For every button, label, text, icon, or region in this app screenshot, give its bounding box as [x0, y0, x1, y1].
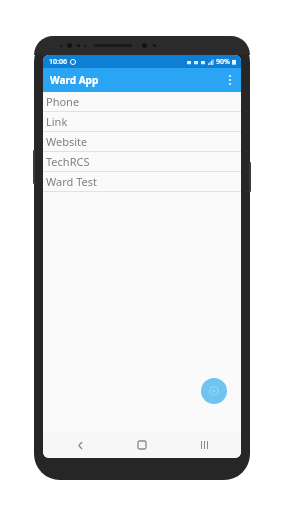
- staticText: Ward Test: [46, 174, 97, 189]
- button[interactable]: Add: [201, 378, 227, 404]
- staticText: 90%: [216, 57, 230, 67]
- button[interactable]: Home: [125, 432, 159, 458]
- button[interactable]: Link: [43, 112, 241, 132]
- button[interactable]: Recents: [187, 432, 221, 458]
- staticText: 10:06: [49, 57, 67, 67]
- button[interactable]: Phone: [43, 92, 241, 112]
- button[interactable]: Back: [63, 432, 97, 458]
- button[interactable]: Ward Test: [43, 172, 241, 192]
- staticText: Website: [46, 134, 88, 149]
- button[interactable]: More options: [219, 68, 241, 92]
- button[interactable]: TechRCS: [43, 152, 241, 172]
- button[interactable]: Website: [43, 132, 241, 152]
- staticText: TechRCS: [46, 154, 90, 169]
- staticText: Ward App: [50, 73, 99, 87]
- staticText: Link: [46, 114, 68, 129]
- staticText: Phone: [46, 94, 80, 109]
